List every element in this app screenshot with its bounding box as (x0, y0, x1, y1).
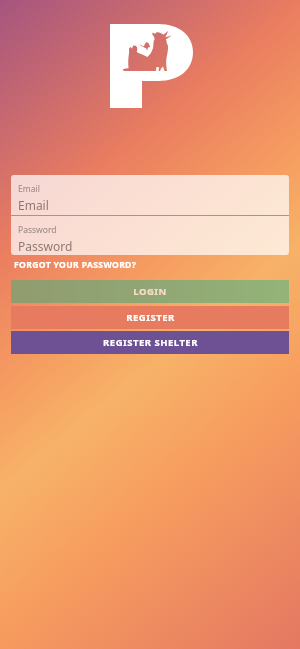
staticText: REGISTER SHELTER (103, 336, 198, 349)
staticText: REGISTER (126, 311, 175, 324)
staticText: Email (18, 197, 49, 213)
button[interactable]: Password (11, 216, 289, 255)
button[interactable]: LOGIN (11, 280, 289, 303)
staticText: Email (18, 183, 40, 195)
staticText: Password (18, 238, 73, 254)
staticText: LOGIN (133, 285, 167, 298)
button[interactable]: FORGOT YOUR PASSWORD? (13, 258, 138, 272)
staticText: Password (18, 224, 57, 236)
button[interactable]: REGISTER (11, 306, 289, 329)
button[interactable]: REGISTER SHELTER (11, 331, 289, 354)
staticText: FORGOT YOUR PASSWORD? (14, 259, 137, 271)
button[interactable]: Email (11, 175, 289, 215)
